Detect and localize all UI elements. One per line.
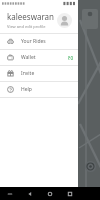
staticText: Invite	[21, 70, 73, 77]
button[interactable]: Keyboard	[0, 187, 20, 200]
button[interactable]: Back	[20, 187, 40, 200]
staticText: Your Rides	[21, 38, 73, 45]
staticText: Help	[21, 86, 73, 93]
button[interactable]: My location	[85, 161, 96, 172]
button[interactable]: Home	[40, 187, 60, 200]
button[interactable]: Wallet	[0, 50, 78, 65]
button[interactable]: Map card	[82, 9, 98, 29]
button[interactable]: Invite	[0, 66, 78, 81]
staticText: ₹0	[67, 55, 73, 61]
button[interactable]: Help	[0, 82, 78, 97]
staticText: View and edit profile	[7, 24, 46, 29]
staticText: Wallet	[21, 54, 67, 61]
button[interactable]: kaleeswaran	[0, 7, 78, 33]
staticText: kaleeswaran	[7, 11, 55, 22]
button[interactable]: Recents	[60, 187, 80, 200]
button[interactable]: Your Rides	[0, 34, 78, 49]
